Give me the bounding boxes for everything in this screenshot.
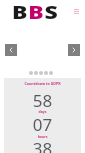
staticText: 07 — [4, 113, 81, 136]
staticText: B — [12, 1, 28, 24]
button[interactable]: Slide 4 — [44, 71, 48, 75]
staticText: 58 — [4, 89, 81, 112]
button[interactable]: Previous — [5, 44, 17, 56]
staticText: 38 — [4, 137, 81, 153]
button[interactable]: Slide 2 — [34, 71, 38, 75]
button[interactable]: Next — [68, 44, 80, 56]
staticText: B — [28, 1, 44, 24]
button[interactable]: Slide 5 — [49, 71, 53, 75]
staticText: hours — [4, 134, 81, 139]
button[interactable]: Slide 3 — [39, 71, 43, 75]
button[interactable]: Menu — [70, 5, 82, 17]
button[interactable]: Slide 1 — [29, 71, 33, 75]
staticText: S — [44, 1, 58, 24]
staticText: Countdown to GDPR — [4, 81, 81, 86]
button[interactable]: BBS home — [12, 1, 58, 24]
staticText: days — [4, 109, 81, 114]
